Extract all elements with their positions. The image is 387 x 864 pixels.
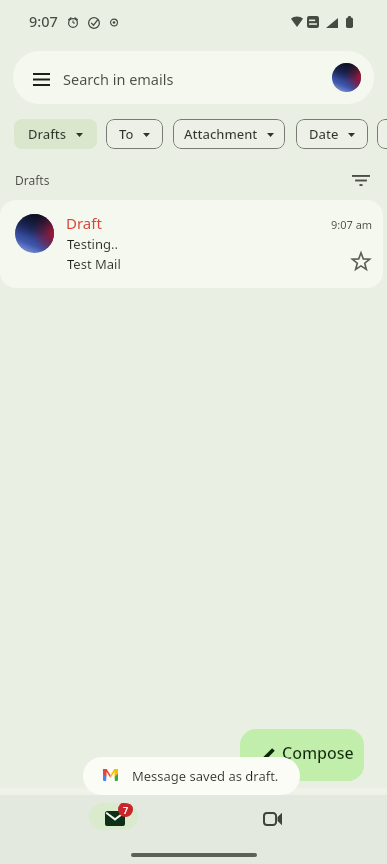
staticText: 9:07 am [331, 217, 373, 232]
staticText: Draft [66, 213, 102, 233]
button[interactable]: Meet [248, 803, 297, 830]
button[interactable]: Message saved as draft. [83, 757, 300, 795]
staticText: Search in emails [63, 69, 174, 89]
button[interactable]: Unread [377, 119, 387, 149]
staticText: Drafts [28, 125, 67, 143]
staticText: Drafts [15, 172, 50, 188]
staticText: Date [309, 125, 339, 143]
staticText: 9:07 [29, 11, 58, 31]
staticText: Compose [282, 742, 354, 764]
staticText: Test Mail [67, 255, 121, 273]
staticText: Message saved as draft. [132, 767, 279, 785]
button[interactable]: Sort and filter [352, 175, 370, 186]
button[interactable]: Date [296, 119, 368, 149]
button[interactable]: Attachment [173, 119, 285, 149]
button[interactable]: To [106, 119, 163, 149]
button[interactable]: Open navigation menu [33, 73, 50, 86]
button[interactable]: Account [332, 63, 361, 92]
button[interactable]: Star [351, 252, 371, 272]
staticText: Testing.. [67, 235, 118, 253]
staticText: To [119, 125, 134, 143]
button[interactable]: Drafts [14, 119, 97, 149]
staticText: Attachment [184, 125, 258, 143]
button[interactable]: Compose [240, 729, 364, 781]
staticText: 7 [123, 804, 129, 816]
button[interactable]: Draft [0, 200, 383, 288]
button[interactable]: Open navigation menu [13, 51, 374, 104]
button[interactable]: Mail [89, 803, 138, 830]
